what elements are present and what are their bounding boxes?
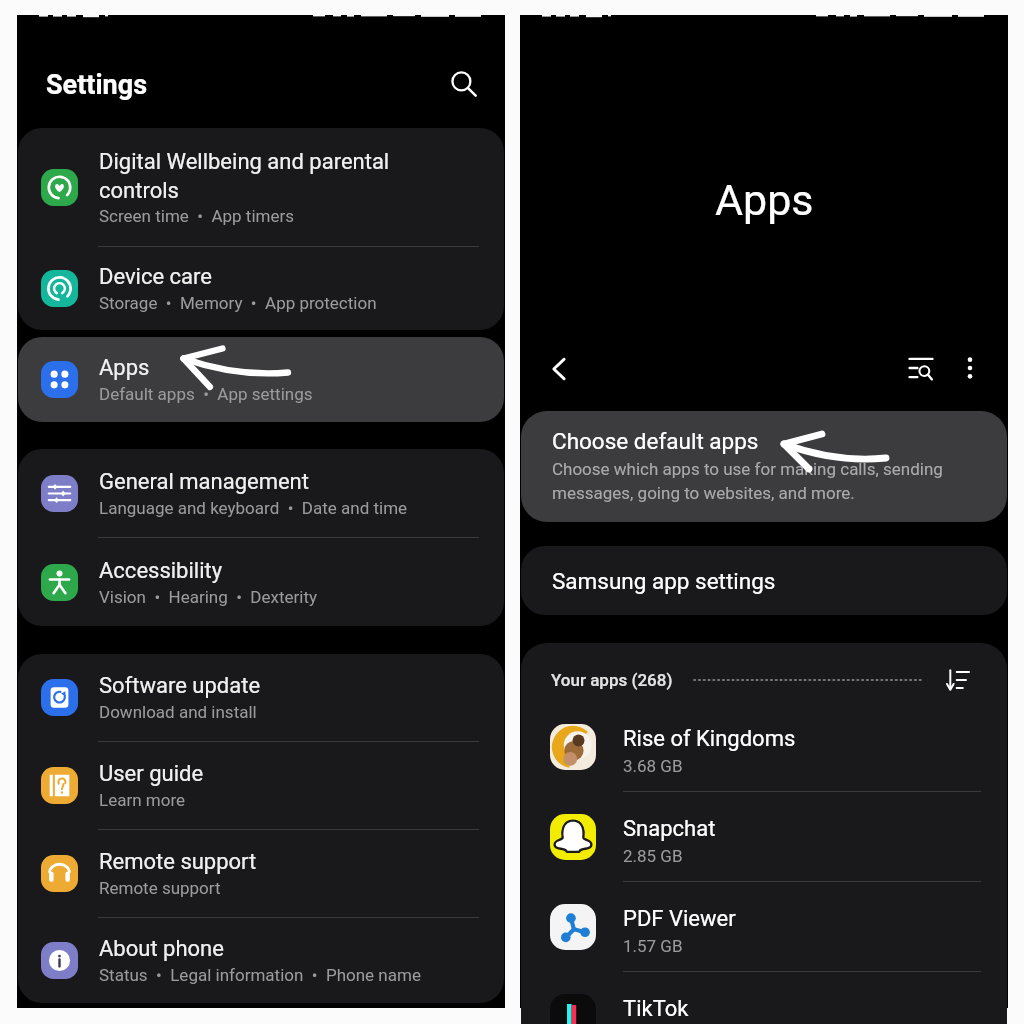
staticText: Default apps • App settings [99,384,313,404]
button[interactable]: Samsung app settings [521,546,1007,615]
staticText: PDF Viewer [623,906,736,932]
button[interactable]: General management [18,449,504,537]
staticText: Storage • Memory • App protection [99,293,377,313]
staticText: Choose which apps to use for making call… [552,459,983,503]
button[interactable]: Rise of Kingdoms [521,702,1007,791]
staticText: Software update [99,673,484,699]
button[interactable]: Choose default apps [521,411,1007,522]
button[interactable]: Device care [18,247,504,330]
staticText: Your apps (268) [551,670,673,690]
staticText: About phone [99,936,484,962]
staticText: Choose default apps [552,428,759,454]
button[interactable]: Remote support [18,830,504,917]
staticText: Digital Wellbeing and parental controls [99,149,409,203]
staticText: Remote support [99,878,221,898]
button[interactable]: Apps [18,337,504,422]
button[interactable]: Digital Wellbeing and parental controls [18,128,504,246]
staticText: Remote support [99,849,484,875]
button[interactable]: User guide [18,742,504,829]
button[interactable]: Accessibility [18,538,504,626]
button[interactable]: More options [950,348,990,388]
button[interactable]: TikTok [521,972,1007,1024]
staticText: Rise of Kingdoms [623,726,796,752]
staticText: 3.68 GB [623,756,683,776]
button[interactable]: Search [443,63,485,105]
button[interactable]: Navigate up [538,348,580,390]
button[interactable]: About phone [18,918,504,1003]
staticText: Settings [46,69,148,101]
button[interactable]: PDF Viewer [521,882,1007,971]
staticText: Samsung app settings [552,568,776,594]
staticText: Accessibility [99,558,484,584]
staticText: Screen time • App timers [99,206,295,226]
button[interactable]: Apps [18,337,504,422]
staticText: Device care [99,264,484,290]
staticText: General management [99,469,484,495]
button[interactable]: Sort [943,665,973,695]
staticText: User guide [99,761,484,787]
staticText: Apps [715,175,814,225]
staticText: Language and keyboard • Date and time [99,498,408,518]
staticText: 2.85 GB [623,846,683,866]
staticText: TikTok [623,996,689,1022]
staticText: Snapchat [623,816,716,842]
staticText: 1.57 GB [623,936,683,956]
staticText: Apps [99,355,484,381]
button[interactable]: Snapchat [521,792,1007,881]
staticText: Download and install [99,702,257,722]
staticText: Learn more [99,790,186,810]
staticText: Vision • Hearing • Dexterity [99,587,318,607]
button[interactable]: Search apps [901,348,941,388]
button[interactable]: Software update [18,654,504,741]
staticText: Status • Legal information • Phone name [99,965,421,985]
